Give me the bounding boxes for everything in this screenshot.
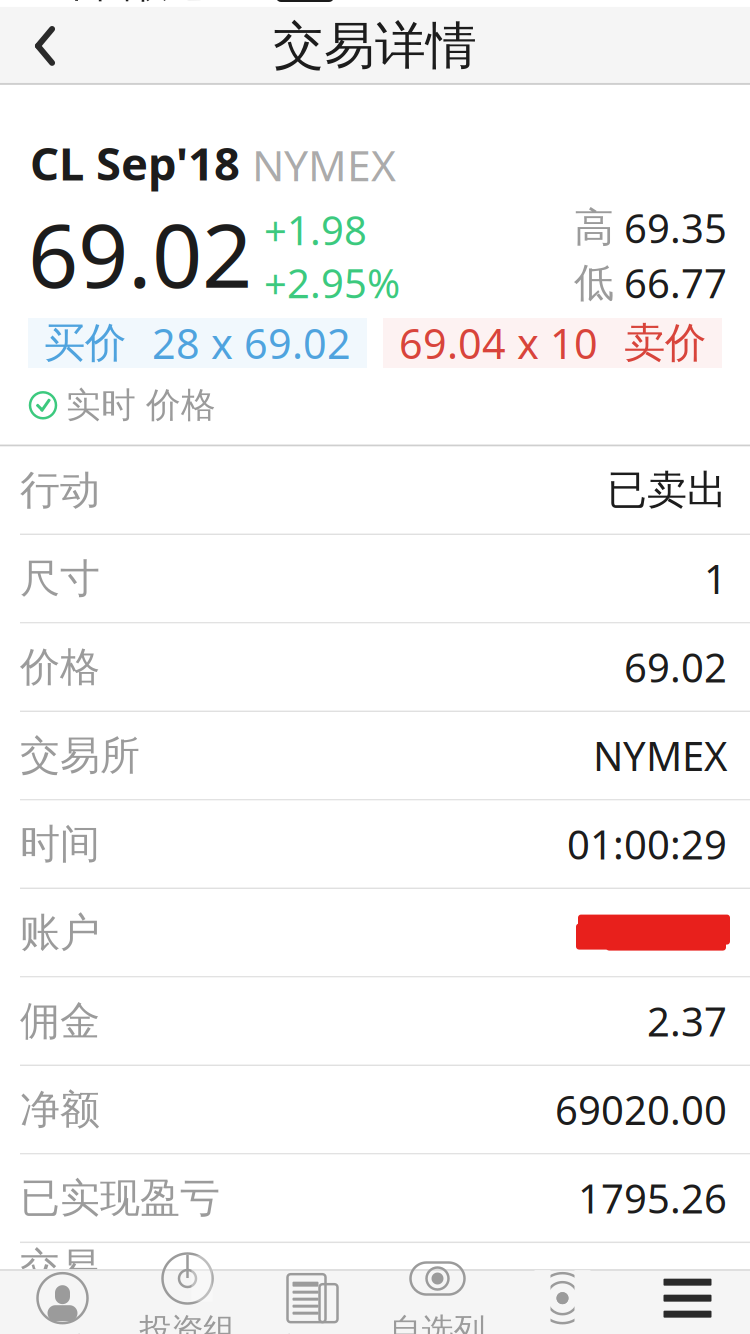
staticText: 行动 bbox=[20, 465, 100, 515]
staticText: 高 bbox=[574, 203, 614, 252]
button[interactable]: 账户 bbox=[0, 889, 750, 976]
button[interactable]: 佣金 bbox=[0, 978, 750, 1065]
staticText: NYMEX bbox=[252, 136, 396, 193]
staticText: 卖价 bbox=[624, 318, 706, 368]
staticText: 已卖出 bbox=[607, 465, 727, 515]
staticText: +2.95% bbox=[264, 256, 400, 309]
button[interactable]: 行动 bbox=[0, 447, 750, 534]
staticText: 69.35 bbox=[624, 201, 727, 254]
staticText: 1795.26 bbox=[578, 1171, 727, 1225]
button[interactable]: 时间 bbox=[0, 801, 750, 888]
button[interactable]: 净额 bbox=[0, 1066, 750, 1153]
staticText: 买价 bbox=[44, 318, 126, 368]
staticText: 时间 bbox=[20, 819, 100, 869]
button[interactable]: 投资组合 bbox=[125, 1271, 250, 1334]
staticText: 69.02 bbox=[624, 640, 727, 694]
button[interactable]: 扫描仪 bbox=[500, 1271, 625, 1334]
staticText: 4G bbox=[218, 0, 265, 9]
staticText: 低 bbox=[574, 258, 614, 307]
button[interactable]: 尺寸 bbox=[0, 535, 750, 622]
staticText: +1.98 bbox=[264, 203, 367, 256]
button[interactable]: 更多 bbox=[625, 1271, 750, 1334]
staticText: 交易所 bbox=[20, 731, 140, 780]
staticText: 01:00:29 bbox=[567, 817, 727, 871]
staticText: 01:33 bbox=[389, 0, 483, 9]
staticText: 交易详情 bbox=[273, 15, 477, 77]
staticText: 价格 bbox=[20, 642, 100, 692]
staticText: 66.77 bbox=[624, 256, 727, 309]
button[interactable]: 价格 bbox=[0, 624, 750, 711]
staticText: 69.04 x 10 bbox=[399, 315, 598, 370]
staticText: CL Sep'18 bbox=[30, 133, 240, 193]
staticText: 交易 bbox=[20, 1243, 100, 1292]
staticText: 69020.00 bbox=[555, 1083, 727, 1136]
staticText: 中国联通 bbox=[60, 0, 204, 7]
button[interactable]: 交易所 bbox=[0, 712, 750, 799]
staticText: NYMEX bbox=[593, 729, 727, 782]
staticText: 佣金 bbox=[20, 996, 100, 1046]
staticText: 尺寸 bbox=[20, 554, 100, 603]
staticText: 2.37 bbox=[647, 994, 727, 1048]
button[interactable]: 返回 bbox=[0, 7, 90, 85]
button[interactable]: 自选列表 bbox=[375, 1271, 500, 1334]
button[interactable]: 买价 bbox=[28, 318, 367, 368]
button[interactable]: 新闻 bbox=[250, 1271, 375, 1334]
staticText: 实时 价格 bbox=[66, 384, 216, 427]
staticText: 已实现盈亏 bbox=[20, 1173, 220, 1223]
staticText: 账户 bbox=[20, 908, 100, 957]
staticText: 69.02 bbox=[28, 195, 252, 312]
staticText: 投资组合 bbox=[139, 1310, 235, 1334]
staticText: 自选列表 bbox=[389, 1310, 485, 1334]
staticText: 28 x 69.02 bbox=[152, 315, 351, 370]
staticText: 净额 bbox=[20, 1085, 100, 1134]
staticText: 85% bbox=[598, 0, 670, 9]
button[interactable]: 69.04 x 10 bbox=[383, 318, 722, 368]
button[interactable]: 已实现盈亏 bbox=[0, 1155, 750, 1242]
staticText: 1 bbox=[704, 552, 727, 605]
button[interactable]: 账户 bbox=[0, 1271, 125, 1334]
